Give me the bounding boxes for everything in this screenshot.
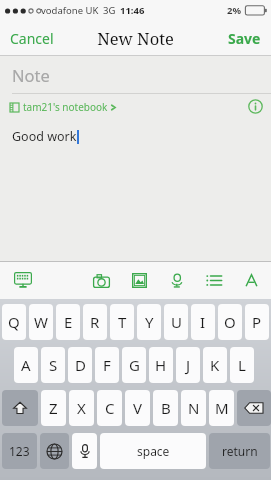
staticText: vodafone UK bbox=[41, 4, 99, 17]
button[interactable]: Q bbox=[2, 304, 26, 340]
button[interactable]: D bbox=[68, 347, 92, 383]
staticText: Z bbox=[49, 398, 58, 418]
staticText: D bbox=[75, 355, 86, 375]
button[interactable]: P bbox=[245, 304, 269, 340]
staticText: L bbox=[238, 355, 246, 375]
staticText: H bbox=[155, 355, 167, 375]
button[interactable]: E bbox=[56, 304, 80, 340]
button[interactable]: U bbox=[164, 304, 188, 340]
staticText: E bbox=[64, 312, 73, 332]
staticText: T bbox=[118, 312, 127, 332]
button[interactable]: Y bbox=[137, 304, 161, 340]
button[interactable]: V bbox=[125, 390, 150, 426]
button[interactable]: Cancel bbox=[0, 23, 64, 54]
staticText: I bbox=[200, 312, 206, 332]
staticText: O bbox=[224, 312, 236, 332]
button[interactable]: J bbox=[176, 347, 200, 383]
button[interactable]: W bbox=[29, 304, 53, 340]
button[interactable]: Format text bbox=[244, 273, 259, 288]
staticText: space bbox=[137, 443, 170, 459]
staticText: W bbox=[34, 312, 48, 332]
staticText: 3G bbox=[103, 4, 116, 17]
staticText: Y bbox=[145, 312, 154, 332]
button[interactable]: C bbox=[97, 390, 122, 426]
button[interactable]: Camera bbox=[93, 274, 110, 288]
staticText: 11:46 bbox=[120, 4, 145, 17]
staticText: G bbox=[129, 355, 140, 375]
staticText: K bbox=[210, 355, 220, 375]
button[interactable]: Shift bbox=[2, 390, 38, 426]
button[interactable]: K bbox=[203, 347, 227, 383]
staticText: M bbox=[215, 398, 229, 418]
button[interactable]: G bbox=[122, 347, 146, 383]
button[interactable]: Checklist bbox=[206, 274, 222, 287]
button[interactable]: Change keyboard bbox=[40, 433, 69, 469]
button[interactable]: S bbox=[41, 347, 65, 383]
button[interactable]: return bbox=[209, 433, 270, 469]
button[interactable]: H bbox=[149, 347, 173, 383]
button[interactable]: L bbox=[230, 347, 254, 383]
staticText: N bbox=[188, 398, 200, 418]
button[interactable]: F bbox=[95, 347, 119, 383]
button[interactable]: O bbox=[218, 304, 242, 340]
staticText: J bbox=[186, 355, 191, 375]
button[interactable]: I bbox=[191, 304, 215, 340]
staticText: Good work bbox=[12, 128, 77, 145]
button[interactable]: Keyboard bbox=[14, 272, 32, 288]
button[interactable]: Note info bbox=[248, 99, 263, 114]
button[interactable]: Note bbox=[0, 56, 271, 93]
staticText: Save bbox=[228, 29, 261, 48]
button[interactable]: Save bbox=[218, 23, 271, 54]
staticText: C bbox=[105, 398, 115, 418]
button[interactable]: B bbox=[153, 390, 178, 426]
staticText: X bbox=[77, 398, 86, 418]
staticText: Note bbox=[12, 64, 50, 86]
staticText: A bbox=[21, 355, 31, 375]
staticText: P bbox=[252, 312, 262, 332]
staticText: Cancel bbox=[10, 29, 54, 48]
staticText: Q bbox=[8, 312, 20, 332]
button[interactable]: Dictation bbox=[72, 433, 97, 469]
staticText: tam21's notebook bbox=[23, 100, 108, 114]
button[interactable]: N bbox=[181, 390, 206, 426]
button[interactable]: 123 bbox=[2, 433, 37, 469]
button[interactable]: space bbox=[100, 433, 206, 469]
staticText: U bbox=[171, 312, 182, 332]
button[interactable]: R bbox=[83, 304, 107, 340]
button[interactable]: Z bbox=[41, 390, 66, 426]
button[interactable]: X bbox=[69, 390, 94, 426]
staticText: S bbox=[49, 355, 58, 375]
staticText: 123 bbox=[9, 443, 30, 459]
staticText: V bbox=[133, 398, 143, 418]
staticText: return bbox=[222, 443, 258, 459]
button[interactable]: Photo bbox=[132, 273, 147, 288]
button[interactable]: M bbox=[209, 390, 234, 426]
staticText: B bbox=[161, 398, 171, 418]
button[interactable]: Delete bbox=[237, 390, 271, 426]
button[interactable]: T bbox=[110, 304, 134, 340]
button[interactable]: A bbox=[14, 347, 38, 383]
button[interactable]: tam21's notebook bbox=[0, 97, 123, 117]
button[interactable]: Audio bbox=[169, 273, 184, 288]
staticText: 2% bbox=[227, 4, 242, 17]
staticText: New Note bbox=[97, 27, 174, 49]
staticText: R bbox=[90, 312, 100, 332]
staticText: F bbox=[103, 355, 111, 375]
